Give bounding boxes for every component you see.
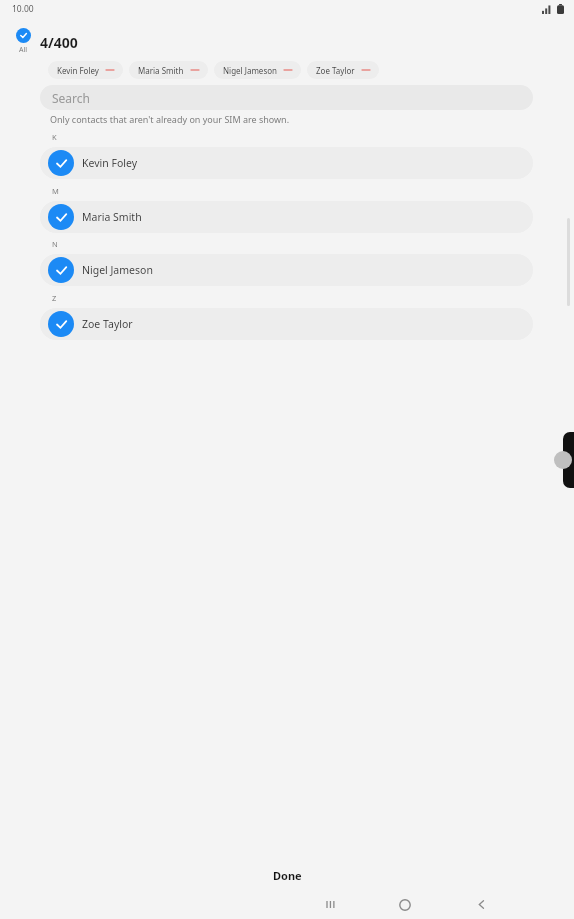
- button[interactable]: Edge panel: [563, 432, 574, 488]
- staticText: Done: [273, 868, 302, 883]
- button[interactable]: Search: [40, 85, 533, 110]
- button[interactable]: Zoe Taylor: [307, 61, 379, 79]
- staticText: Search: [52, 90, 90, 106]
- button[interactable]: Back: [457, 890, 505, 919]
- button[interactable]: Maria Smith: [40, 201, 533, 233]
- staticText: Zoe Taylor: [316, 65, 355, 76]
- staticText: Nigel Jameson: [82, 263, 153, 277]
- staticText: Zoe Taylor: [82, 317, 133, 331]
- staticText: Maria Smith: [138, 65, 184, 76]
- button[interactable]: Home: [381, 890, 429, 919]
- staticText: 10.00: [12, 3, 34, 15]
- staticText: K: [52, 132, 57, 142]
- staticText: N: [52, 239, 58, 249]
- button[interactable]: Nigel Jameson: [214, 61, 301, 79]
- staticText: Only contacts that aren't already on you…: [50, 113, 290, 125]
- staticText: 4/400: [40, 33, 78, 52]
- button[interactable]: Kevin Foley: [48, 61, 123, 79]
- button[interactable]: Select all: [8, 28, 38, 62]
- button[interactable]: Maria Smith: [129, 61, 208, 79]
- staticText: Kevin Foley: [82, 156, 138, 170]
- staticText: Kevin Foley: [57, 65, 99, 76]
- button[interactable]: Zoe Taylor: [40, 308, 533, 340]
- staticText: Z: [52, 293, 57, 303]
- button[interactable]: Nigel Jameson: [40, 254, 533, 286]
- staticText: Maria Smith: [82, 210, 142, 224]
- staticText: All: [19, 45, 28, 55]
- staticText: Nigel Jameson: [223, 65, 277, 76]
- button[interactable]: Kevin Foley: [40, 147, 533, 179]
- button[interactable]: Recent apps: [307, 890, 355, 919]
- staticText: M: [52, 186, 59, 196]
- button[interactable]: Done: [0, 862, 574, 888]
